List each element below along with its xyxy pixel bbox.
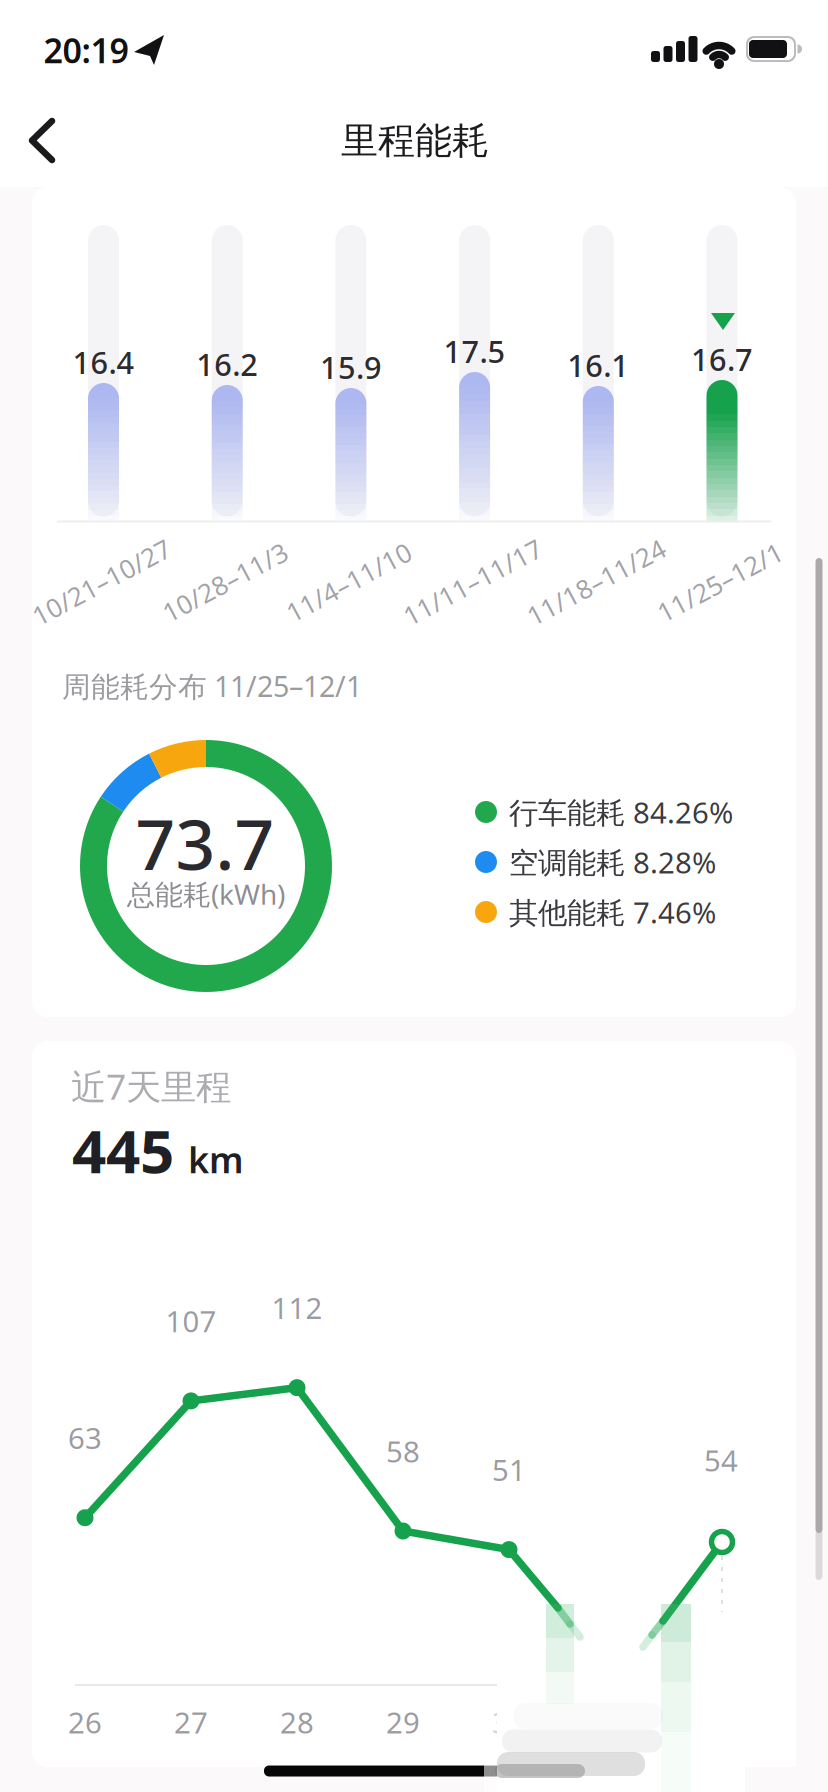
- staticText: 空调能耗 8.28%: [509, 842, 716, 882]
- staticText: 20:19: [43, 27, 128, 73]
- staticText: 63: [68, 1418, 102, 1458]
- staticText: 11/18–11/24: [520, 564, 673, 600]
- staticText: 28: [280, 1702, 314, 1742]
- staticText: 30: [492, 1702, 526, 1742]
- staticText: 16.4: [72, 341, 134, 383]
- staticText: 107: [165, 1301, 216, 1341]
- staticText: 445: [72, 1109, 174, 1191]
- staticText: 近7天里程: [71, 1062, 231, 1110]
- staticText: km: [188, 1135, 244, 1184]
- staticText: 行车能耗 84.26%: [509, 792, 733, 832]
- staticText: 1: [606, 1702, 623, 1742]
- staticText: 54: [704, 1440, 738, 1480]
- staticText: 73.7: [135, 796, 274, 890]
- button[interactable]: Back: [4, 102, 80, 178]
- staticText: 51: [492, 1450, 526, 1490]
- staticText: 11/11–11/17: [396, 564, 549, 600]
- staticText: 15.9: [320, 346, 382, 388]
- staticText: 17.5: [444, 330, 506, 372]
- staticText: 10/28–11/3: [156, 564, 294, 600]
- staticText: 58: [386, 1431, 420, 1471]
- staticText: 11/4–11/10: [280, 564, 418, 600]
- staticText: 16.1: [567, 344, 629, 386]
- staticText: 10/21–10/27: [25, 564, 178, 600]
- staticText: 27: [174, 1702, 208, 1742]
- staticText: 112: [271, 1288, 322, 1328]
- staticText: 29: [386, 1702, 420, 1742]
- staticText: 11/25–12/1: [651, 564, 789, 600]
- staticText: 里程能耗: [341, 118, 489, 164]
- staticText: 16.2: [196, 343, 258, 385]
- staticText: 其他能耗 7.46%: [509, 892, 716, 932]
- staticText: 总能耗(kWh): [127, 875, 285, 913]
- staticText: 16.7: [691, 338, 753, 380]
- staticText: 26: [68, 1702, 102, 1742]
- staticText: 周能耗分布 11/25–12/1: [62, 666, 362, 705]
